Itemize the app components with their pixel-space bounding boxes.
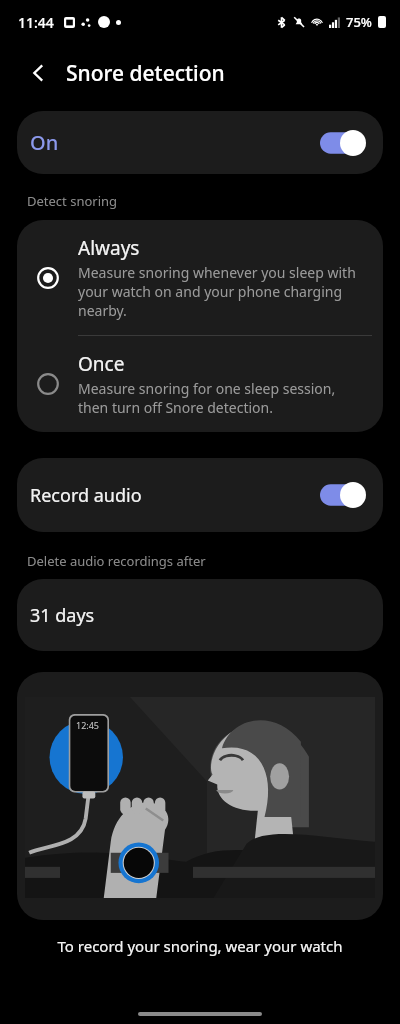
staticText: Detect snoring [27,192,118,210]
staticText: Measure snoring for one sleep session, t… [78,379,361,417]
staticText: Snore detection [66,59,225,88]
staticText: Once [78,351,125,377]
button[interactable]: Record audio [17,458,383,532]
staticText: 11:44 [18,13,54,32]
staticText: To record your snoring, wear your watch [0,936,400,956]
button[interactable]: Once [17,336,383,432]
staticText: Delete audio recordings after [27,552,206,570]
staticText: On [30,129,59,156]
staticText: Always [78,235,140,261]
staticText: 31 days [30,603,95,628]
button[interactable]: Always [17,220,383,335]
button[interactable]: On [17,111,383,174]
staticText: 75% [346,13,372,31]
button[interactable]: 31 days [17,579,383,651]
staticText: Measure snoring whenever you sleep with … [78,263,361,320]
button[interactable]: Back [20,54,58,92]
staticText: 12:45 [76,719,100,731]
staticText: Record audio [30,483,142,508]
